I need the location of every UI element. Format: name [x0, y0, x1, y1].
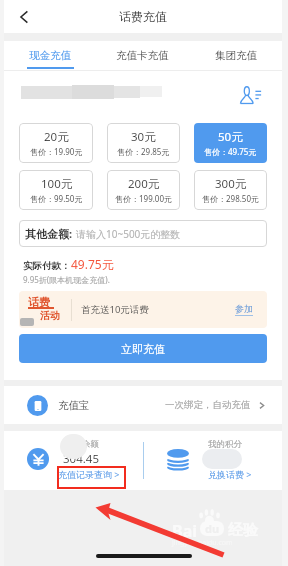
staticText: 50元 — [218, 129, 243, 145]
staticText: 售价：298.50元 — [202, 193, 260, 204]
staticText: 集团充值 — [215, 49, 257, 62]
staticText: 售价：49.75元 — [204, 146, 257, 157]
button[interactable]: 我的积分 — [144, 431, 282, 490]
button[interactable]: 立即充值 — [19, 334, 267, 363]
staticText: 立即充值 — [121, 342, 165, 356]
button[interactable]: 30元 — [107, 123, 180, 163]
staticText: 200元 — [128, 176, 160, 192]
staticText: 300元 — [215, 176, 247, 192]
staticText: 9.95折(限本机现金充值). — [23, 274, 110, 285]
staticText: 话费 — [28, 295, 50, 309]
button[interactable]: 现金充值 — [4, 41, 96, 70]
button[interactable]: 100元 — [19, 170, 93, 210]
button[interactable]: 其他金额: — [19, 220, 267, 247]
staticText: 一次绑定，自动充值 — [165, 399, 251, 411]
staticText: 活动 — [40, 309, 60, 322]
staticText: 49.75元 — [71, 256, 114, 272]
staticText: 经验 — [228, 521, 258, 540]
staticText: 20元 — [44, 129, 69, 145]
button[interactable]: 20元 — [19, 123, 93, 163]
staticText: 现金充值 — [29, 49, 71, 62]
button[interactable]: Back — [14, 7, 34, 27]
button[interactable]: 话费 — [19, 291, 267, 328]
button[interactable]: 集团充值 — [189, 41, 282, 70]
staticText: 充值宝 — [58, 399, 90, 412]
staticText: 我的积分 — [208, 439, 242, 450]
button[interactable]: 充值宝 — [4, 386, 282, 424]
button[interactable]: 手机余额 — [4, 431, 139, 490]
button[interactable]: 充值卡充值 — [96, 41, 189, 70]
button[interactable]: 200元 — [107, 170, 180, 210]
staticText: 其他金额: — [25, 226, 73, 241]
button[interactable]: 300元 — [194, 170, 267, 210]
staticText: 参加 — [235, 303, 253, 314]
staticText: 100元 — [41, 176, 73, 192]
staticText: 首充送10元话费 — [81, 303, 149, 316]
staticText: du — [205, 521, 220, 536]
staticText: 手机余额 — [65, 439, 99, 450]
staticText: 请输入10~500元的整数 — [76, 227, 181, 241]
staticText: 售价：199.00元 — [115, 193, 173, 204]
staticText: 售价：19.90元 — [30, 146, 83, 157]
staticText: jingyan.baidu.com — [172, 538, 233, 548]
staticText: 售价：29.85元 — [117, 146, 170, 157]
staticText: 实际付款： — [23, 260, 71, 272]
staticText: 304.45 — [63, 451, 99, 467]
staticText: 兑换话费 > — [208, 468, 252, 480]
staticText: 话费充值 — [119, 9, 167, 24]
staticText: 售价：99.50元 — [30, 193, 83, 204]
staticText: 30元 — [131, 129, 156, 145]
button[interactable]: Contacts — [238, 82, 264, 108]
staticText: 充值卡充值 — [116, 49, 169, 62]
button[interactable]: 50元 — [194, 123, 267, 163]
staticText: Bai — [172, 520, 198, 542]
staticText: 充值记录查询 > — [58, 468, 120, 480]
